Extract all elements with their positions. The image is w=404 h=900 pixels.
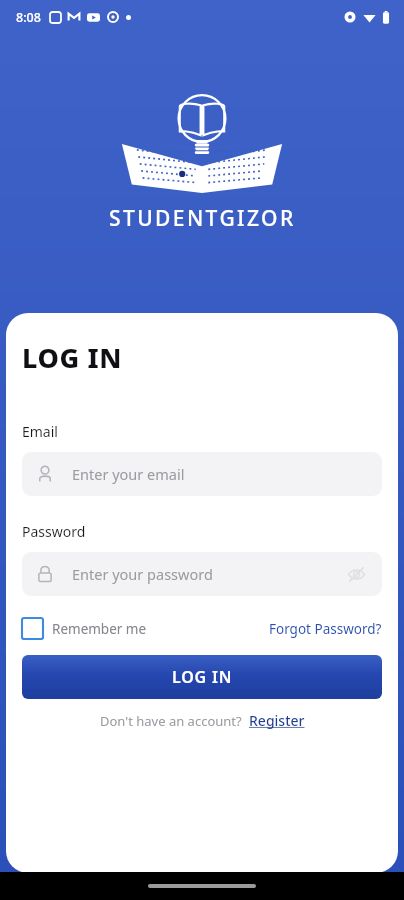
button[interactable]: Show password [344,562,368,586]
staticText: LOG IN [22,339,123,376]
staticText: Email [22,422,58,441]
staticText: Enter your password [72,564,213,584]
staticText: 8:08 [16,9,41,26]
button[interactable]: LOG IN [22,655,382,699]
staticText: Register [249,711,305,730]
button[interactable]: Forgot Password? [269,620,382,638]
staticText: Forgot Password? [269,620,382,638]
button[interactable]: Enter your password [22,552,382,596]
button[interactable]: Register [249,711,305,730]
staticText: STUDENTGIZOR [109,204,296,233]
staticText: Remember me [52,620,147,638]
staticText: LOG IN [172,666,233,688]
staticText: Enter your email [72,464,185,484]
button[interactable]: Remember me [22,618,147,639]
staticText: Password [22,522,86,541]
button[interactable]: Enter your email [22,452,382,496]
staticText: Don't have an account? [100,712,242,730]
